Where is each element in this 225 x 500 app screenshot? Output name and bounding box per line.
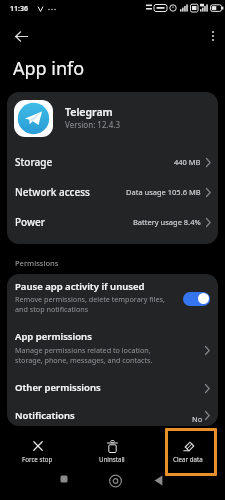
button[interactable]: Uninstall (82, 426, 142, 470)
staticText: Battery usage 8.4% (133, 217, 201, 227)
staticText: Permissions (15, 258, 59, 268)
button[interactable]: Pause app activity if unused (7, 274, 218, 321)
staticText: Uninstall (99, 455, 125, 463)
button[interactable] (183, 292, 210, 306)
staticText: Version: 12.4.3 (65, 119, 120, 130)
staticText: Notifications (15, 409, 75, 422)
staticText: 440 MB (174, 157, 201, 167)
button[interactable]: Network access (15, 177, 211, 207)
staticText: Clear data (173, 455, 203, 463)
staticText: Network access (15, 185, 90, 199)
button[interactable]: Storage (15, 147, 211, 177)
button[interactable]: Notifications (7, 404, 218, 426)
staticText: 11:36 (10, 4, 28, 14)
staticText: Other permissions (15, 381, 101, 394)
staticText: Force stop (22, 455, 53, 463)
button[interactable]: App permissions (7, 321, 218, 377)
staticText: Pause app activity if unused (15, 280, 145, 293)
button[interactable]: Other permissions (7, 377, 218, 404)
staticText: No (192, 414, 203, 424)
staticText: Power (15, 215, 46, 229)
staticText: Storage (15, 155, 53, 169)
staticText: Remove permissions, delete temporary fil… (15, 294, 165, 314)
button[interactable]: Clear data (158, 426, 218, 470)
staticText: Telegram (65, 105, 113, 119)
staticText: Data usage 105.6 MB (126, 187, 201, 197)
staticText: App permissions (15, 330, 92, 343)
staticText: App info (13, 56, 85, 81)
staticText: Manage permissions related to location, … (15, 345, 153, 365)
button[interactable] (6, 24, 36, 48)
button[interactable]: Force stop (7, 426, 67, 470)
button[interactable]: Power (15, 207, 211, 237)
button[interactable] (203, 24, 223, 48)
